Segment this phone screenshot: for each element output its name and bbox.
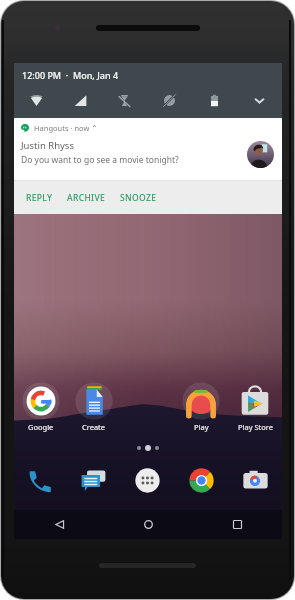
button[interactable]: Create bbox=[67, 382, 120, 440]
button[interactable]: Phone bbox=[14, 460, 67, 500]
staticText: Hangouts · now ⌃ bbox=[34, 123, 98, 133]
button[interactable]: Play Store bbox=[228, 382, 282, 440]
button[interactable] bbox=[237, 87, 282, 113]
button[interactable]: Google bbox=[14, 382, 67, 440]
button[interactable]: Play bbox=[174, 382, 228, 440]
staticText: REPLY bbox=[26, 192, 53, 204]
staticText: Create bbox=[82, 422, 106, 432]
staticText: ARCHIVE bbox=[67, 192, 106, 204]
button[interactable]: Home bbox=[104, 510, 193, 539]
staticText: Play bbox=[194, 422, 209, 432]
button[interactable]: Chrome bbox=[174, 460, 228, 500]
button[interactable] bbox=[147, 87, 192, 113]
button[interactable] bbox=[102, 87, 147, 113]
button[interactable] bbox=[192, 87, 237, 113]
button[interactable]: REPLY bbox=[19, 187, 60, 209]
staticText: Play Store bbox=[238, 422, 273, 432]
button[interactable]: Camera bbox=[228, 460, 282, 500]
button[interactable]: Back bbox=[14, 510, 104, 539]
staticText: Do you want to go see a movie tonight? bbox=[21, 154, 179, 166]
button[interactable]: ARCHIVE bbox=[60, 187, 113, 209]
staticText: Google bbox=[28, 422, 54, 432]
button[interactable] bbox=[14, 87, 58, 113]
staticText: 12:00 PM · Mon, Jan 4 bbox=[22, 69, 119, 81]
staticText: SNOOZE bbox=[120, 192, 157, 204]
staticText: Justin Rhyss bbox=[21, 139, 74, 152]
button[interactable]: Messages bbox=[67, 460, 120, 500]
button[interactable] bbox=[58, 87, 102, 113]
button[interactable]: All apps bbox=[120, 460, 174, 500]
button[interactable]: SNOOZE bbox=[113, 187, 164, 209]
button[interactable]: Recent apps bbox=[193, 510, 282, 539]
